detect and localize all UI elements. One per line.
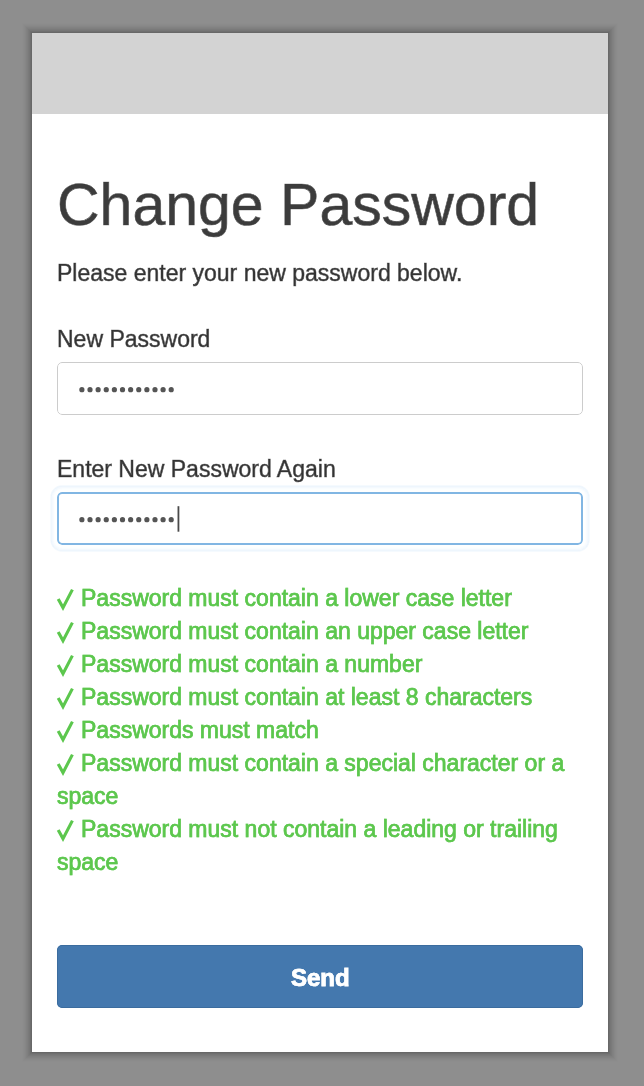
staticText: Passwords must match	[81, 717, 319, 743]
staticText: Change Password	[57, 172, 540, 238]
staticText: Passwords must match	[81, 717, 319, 743]
staticText: Password must contain a special characte…	[81, 750, 565, 776]
button[interactable]: Enter new password again	[57, 492, 583, 545]
staticText: Password must contain a special characte…	[81, 750, 565, 776]
staticText: space	[57, 849, 119, 875]
staticText: New Password	[57, 326, 211, 352]
staticText: space	[57, 783, 119, 809]
staticText: Password must contain a number	[81, 651, 423, 677]
staticText: Enter New Password Again	[57, 456, 336, 482]
staticText: Password must contain a lower case lette…	[81, 585, 512, 611]
staticText: Password must contain an upper case lett…	[81, 618, 529, 644]
staticText: Please enter your new password below.	[57, 260, 463, 286]
button[interactable]: Send	[57, 945, 583, 1008]
staticText: New Password	[57, 326, 211, 352]
staticText: Password must contain a number	[81, 651, 423, 677]
staticText: Please enter your new password below.	[57, 260, 463, 286]
staticText: Password must contain an upper case lett…	[81, 618, 529, 644]
staticText: Change Password	[57, 172, 540, 238]
staticText: space	[57, 783, 119, 809]
staticText: Password must not contain a leading or t…	[81, 816, 558, 842]
staticText: Enter New Password Again	[57, 456, 336, 482]
staticText: Send	[291, 964, 350, 991]
staticText: Password must contain at least 8 charact…	[81, 684, 533, 710]
staticText: space	[57, 849, 119, 875]
staticText: Password must contain at least 8 charact…	[81, 684, 533, 710]
button[interactable]: New password	[57, 362, 583, 415]
staticText: Password must not contain a leading or t…	[81, 816, 558, 842]
staticText: Password must contain a lower case lette…	[81, 585, 512, 611]
staticText: Send	[291, 964, 350, 991]
